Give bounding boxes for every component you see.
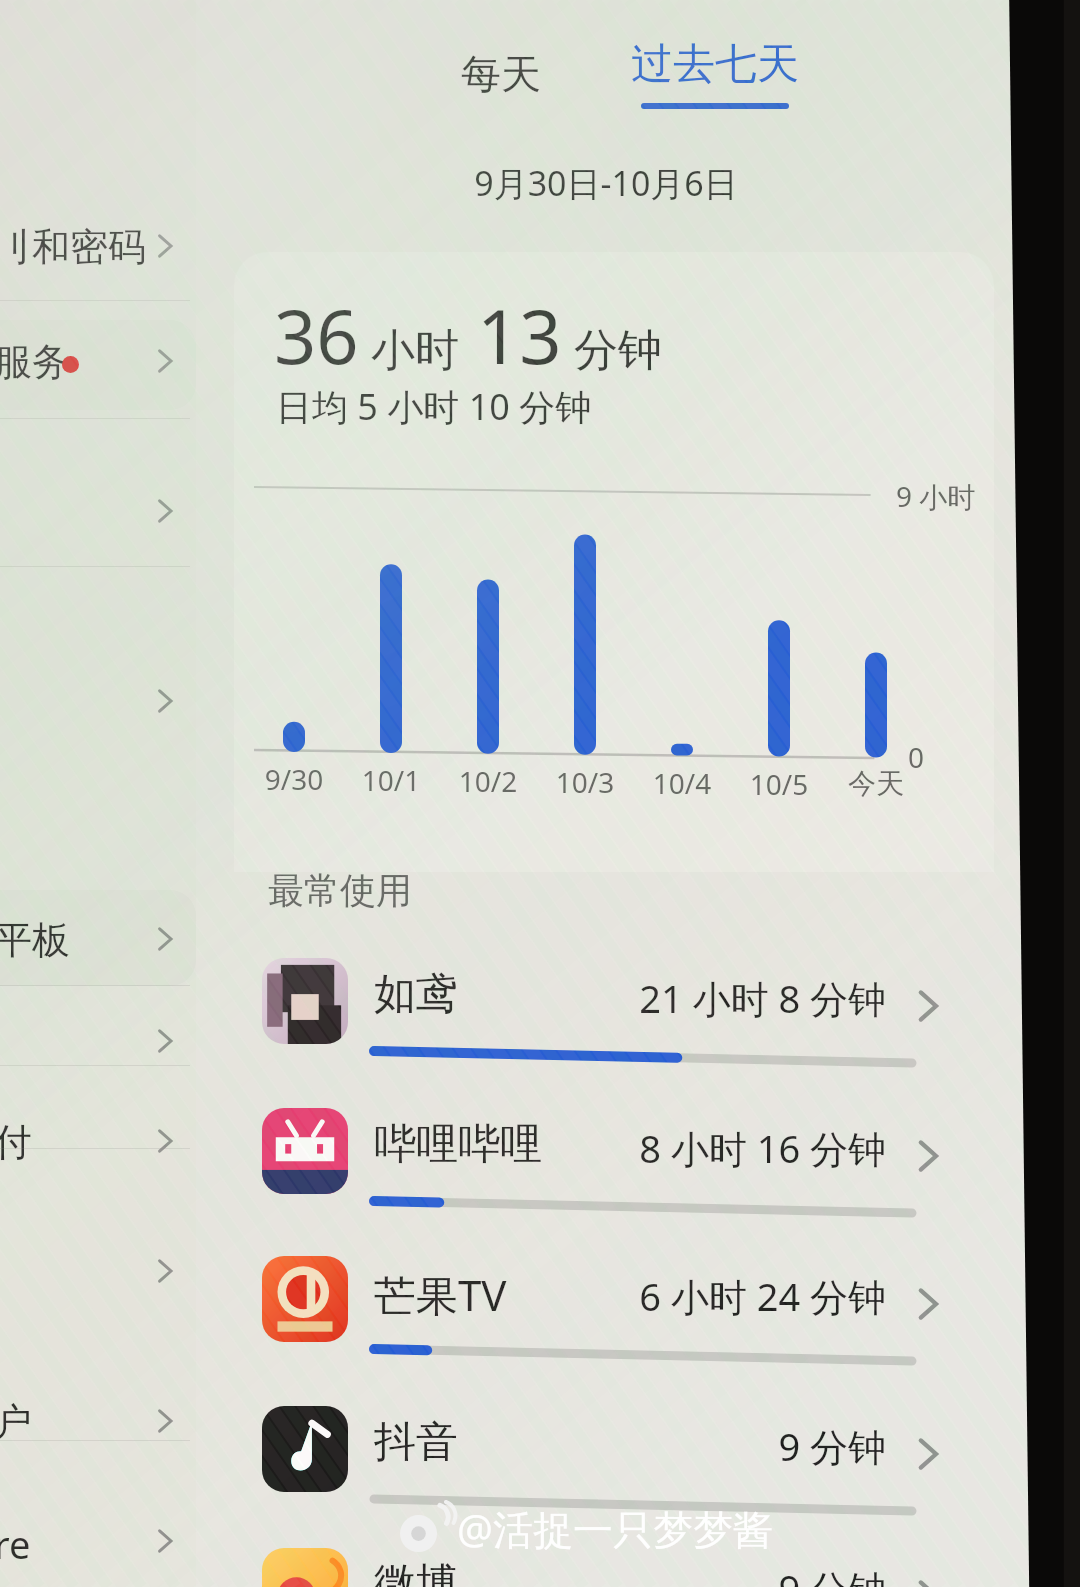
staticText: 9月30日-10月6日: [306, 160, 906, 206]
other: 查看 抖音 详情: [908, 1434, 948, 1474]
button[interactable]: 如鸢: [236, 950, 976, 1090]
button[interactable]: 刂和密码: [0, 205, 196, 293]
staticText: 微博: [374, 1558, 458, 1587]
staticText: @活捉一只梦梦酱: [457, 1501, 773, 1556]
staticText: 9/30: [254, 760, 334, 798]
staticText: 10/5: [739, 765, 819, 803]
button[interactable]: 哔哩哔哩: [236, 1100, 976, 1240]
button[interactable]: 抖音: [236, 1398, 976, 1538]
staticText: 户: [0, 1398, 32, 1446]
button[interactable]: 户: [0, 1380, 196, 1468]
button[interactable]: 芒果TV: [236, 1248, 976, 1388]
staticText: 9 分钟: [596, 1562, 886, 1587]
staticText: 最常使用: [268, 868, 412, 913]
button[interactable]: 平板: [0, 898, 196, 986]
button[interactable]: 每天: [451, 41, 551, 107]
staticText: 抖音: [374, 1416, 458, 1469]
staticText: 10/4: [642, 764, 722, 802]
button[interactable]: [0, 1000, 196, 1088]
staticText: 芒果TV: [374, 1266, 507, 1323]
staticText: 服务: [0, 338, 70, 386]
staticText: 刂和密码: [0, 223, 146, 271]
staticText: 哔哩哔哩: [374, 1118, 542, 1171]
staticText: 今天: [836, 766, 916, 801]
staticText: 分钟: [574, 323, 662, 378]
button[interactable]: [0, 470, 196, 558]
staticText: 过去七天: [631, 38, 799, 91]
other: 查看 哔哩哔哩 详情: [908, 1136, 948, 1176]
other: 查看 芒果TV 详情: [908, 1284, 948, 1324]
staticText: 10/1: [351, 761, 431, 799]
staticText: 8 小时 16 分钟: [596, 1122, 886, 1174]
staticText: 21 小时 8 分钟: [596, 972, 886, 1024]
staticText: 付: [0, 1118, 32, 1166]
button[interactable]: [0, 660, 196, 748]
button[interactable]: re: [0, 1500, 196, 1587]
button[interactable]: 付: [0, 1100, 196, 1188]
staticText: 日均 5 小时 10 分钟: [276, 382, 592, 431]
staticText: 平板: [0, 916, 70, 964]
staticText: 如鸢: [374, 968, 458, 1021]
button[interactable]: 服务: [0, 320, 196, 408]
staticText: 9 小时: [896, 477, 976, 515]
other: 查看 如鸢 详情: [908, 986, 948, 1026]
staticText: 每天: [461, 49, 541, 99]
staticText: 9 分钟: [596, 1420, 886, 1472]
button[interactable]: 过去七天: [623, 38, 807, 109]
button[interactable]: [0, 1230, 196, 1318]
staticText: 36: [274, 285, 359, 386]
staticText: 10/3: [545, 763, 625, 801]
staticText: 10/2: [448, 762, 528, 800]
other: 查看 微博 详情: [908, 1576, 948, 1587]
staticText: re: [0, 1518, 31, 1570]
staticText: 13: [477, 285, 562, 386]
staticText: 6 小时 24 分钟: [596, 1270, 886, 1322]
staticText: 小时: [371, 323, 459, 378]
button[interactable]: 微博: [236, 1540, 976, 1587]
staticText: 0: [908, 738, 925, 776]
